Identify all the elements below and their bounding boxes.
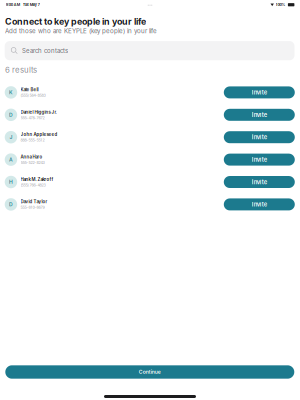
button[interactable]: Search contacts [5,41,294,60]
staticText: A [9,157,13,163]
staticText: Invite [252,134,267,141]
staticText: Kate Bell [21,87,39,92]
staticText: 555-522-8243 [21,160,45,165]
staticText: Add those who are KEYPLE (key people) in… [5,27,157,35]
staticText: Invite [252,156,267,163]
staticText: Invite [252,111,267,118]
staticText: John Appleseed [21,132,58,137]
staticText: Search contacts [22,47,68,54]
button[interactable]: Continue [5,365,294,379]
button[interactable]: Invite [224,154,295,166]
staticText: Daniel Higgins Jr. [21,109,57,115]
staticText: K [9,89,13,95]
staticText: (555) 564-8583 [21,93,46,98]
staticText: Tue May 7 [23,2,40,7]
staticText: Hank M. Zakroff [21,177,54,182]
button[interactable]: Invite [224,86,295,98]
staticText: David Taylor [21,199,48,204]
staticText: Continue [139,369,161,375]
staticText: Invite [252,89,267,96]
staticText: 888-555-5512 [21,138,45,142]
button[interactable]: Invite [224,198,295,210]
staticText: Anna Haro [21,154,43,159]
button[interactable]: Invite [224,109,295,121]
staticText: D [9,201,13,207]
staticText: Invite [252,201,267,208]
staticText: 555-610-6679 [21,205,45,210]
staticText: J [9,134,12,140]
staticText: 100% [275,2,285,7]
button[interactable]: Invite [224,176,295,188]
staticText: Invite [252,178,267,186]
staticText: H [9,179,13,185]
staticText: (555) 766-4823 [21,183,46,187]
staticText: 9:00 AM [6,2,20,7]
staticText: 6 results [5,65,37,75]
staticText: 555-478-7672 [21,115,45,120]
button[interactable]: Invite [224,131,295,143]
staticText: Connect to key people in your life [5,16,146,27]
staticText: D [9,112,13,118]
